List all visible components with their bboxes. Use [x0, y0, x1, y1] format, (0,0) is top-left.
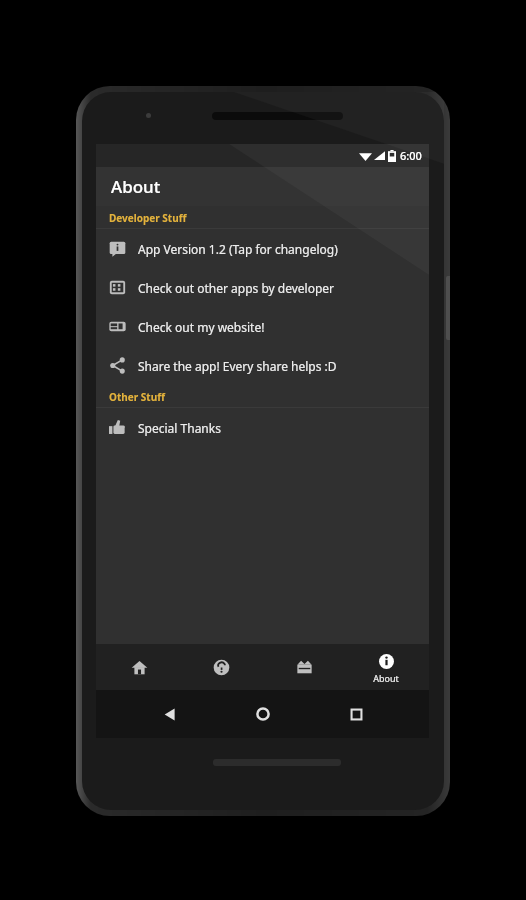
button[interactable]: Special Thanks	[96, 408, 429, 447]
staticText: Developer Stuff	[109, 211, 187, 225]
button[interactable]: Home	[243, 694, 283, 734]
staticText: Check out my website!	[138, 319, 265, 335]
staticText: Check out other apps by developer	[138, 280, 335, 296]
button[interactable]: App Version 1.2 (Tap for changelog)	[96, 229, 429, 268]
button[interactable]: Events	[264, 644, 344, 690]
button[interactable]: Back	[149, 694, 189, 734]
button[interactable]: About	[346, 644, 426, 690]
button[interactable]: Share the app! Every share helps :D	[96, 346, 429, 385]
staticText: Other Stuff	[109, 390, 165, 404]
button[interactable]: Help	[181, 644, 261, 690]
staticText: Special Thanks	[138, 420, 221, 436]
staticText: 6:00	[400, 148, 422, 163]
button[interactable]: Check out my website!	[96, 307, 429, 346]
staticText: Share the app! Every share helps :D	[138, 358, 337, 374]
button[interactable]: Check out other apps by developer	[96, 268, 429, 307]
button[interactable]: Recent apps	[336, 694, 376, 734]
staticText: About	[111, 175, 161, 198]
staticText: App Version 1.2 (Tap for changelog)	[138, 241, 338, 257]
staticText: About	[373, 672, 399, 684]
button[interactable]: Home	[99, 644, 179, 690]
